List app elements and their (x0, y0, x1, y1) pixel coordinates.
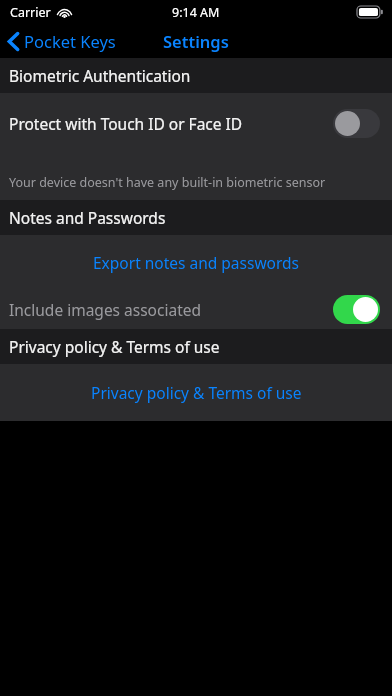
staticText: Export notes and passwords (93, 252, 300, 273)
button[interactable]: Protect with Touch ID or Face ID (0, 93, 392, 153)
button[interactable]: Settings (157, 28, 235, 54)
staticText: Privacy policy & Terms of use (91, 382, 302, 403)
staticText: 9:14 AM (172, 4, 220, 21)
staticText: Carrier (10, 4, 51, 21)
button[interactable]: Toggle on (333, 295, 380, 324)
staticText: Your device doesn't have any built-in bi… (9, 174, 326, 191)
staticText: Biometric Authentication (9, 65, 191, 86)
staticText: Notes and Passwords (9, 207, 166, 228)
staticText: Protect with Touch ID or Face ID (9, 113, 243, 134)
button[interactable]: Privacy policy & Terms of use (0, 364, 392, 421)
other: Back (8, 32, 19, 51)
button[interactable]: Include images associated (0, 289, 392, 329)
staticText: Settings (163, 30, 229, 52)
staticText: Privacy policy & Terms of use (9, 336, 220, 357)
button[interactable]: Toggle off (333, 109, 380, 138)
staticText: Pocket Keys (24, 30, 116, 52)
button[interactable]: Back (8, 30, 116, 52)
staticText: Include images associated (9, 299, 201, 320)
button[interactable]: Export notes and passwords (0, 235, 392, 289)
